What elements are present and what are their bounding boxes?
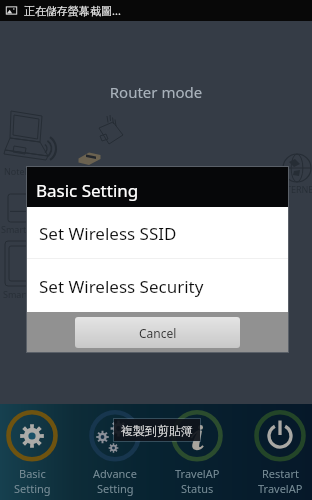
other: Screenshot bbox=[5, 4, 18, 17]
staticText: Setting bbox=[97, 481, 134, 496]
staticText: NoteBook bbox=[4, 165, 47, 177]
staticText: Smart phone bbox=[1, 223, 56, 235]
staticText: 正在儲存螢幕截圖... bbox=[24, 3, 121, 18]
staticText: Basic Setting bbox=[36, 179, 139, 202]
button[interactable]: TravelAP Status bbox=[165, 404, 229, 496]
staticText: Set Wireless SSID bbox=[39, 222, 177, 245]
button[interactable]: Advance Setting bbox=[83, 404, 147, 496]
staticText: TravelAP bbox=[258, 481, 303, 496]
button[interactable]: Cancel bbox=[75, 317, 240, 348]
staticText: Setting bbox=[14, 481, 51, 496]
staticText: INTERNET bbox=[276, 183, 312, 195]
staticText: Advance bbox=[93, 466, 137, 481]
staticText: Router mode bbox=[0, 82, 312, 102]
button[interactable]: Set Wireless Security bbox=[27, 259, 288, 312]
button[interactable]: Set Wireless SSID bbox=[27, 207, 288, 258]
staticText: Cancel bbox=[139, 325, 177, 341]
staticText: Restart bbox=[262, 466, 299, 481]
staticText: Smart Pad bbox=[3, 288, 47, 300]
button[interactable]: Restart TravelAP bbox=[248, 404, 312, 496]
staticText: Basic bbox=[19, 466, 46, 481]
staticText: Set Wireless Security bbox=[39, 275, 204, 298]
staticText: Status bbox=[181, 481, 214, 496]
button[interactable]: Basic Setting bbox=[0, 404, 64, 496]
staticText: 複製到剪貼簿 bbox=[121, 423, 193, 438]
staticText: TravelAP bbox=[175, 466, 220, 481]
